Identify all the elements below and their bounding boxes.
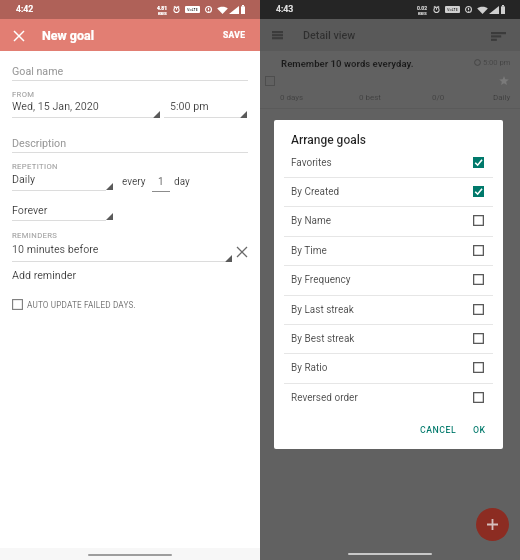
staticText: Add reminder [12, 269, 77, 282]
button[interactable]: Reversed order [274, 383, 503, 412]
staticText: Reversed order [291, 392, 358, 404]
button[interactable]: By Time [274, 236, 503, 265]
staticText: Favorites [291, 157, 332, 169]
button[interactable]: Sort [487, 25, 509, 47]
staticText: FROM [12, 90, 35, 99]
staticText: 0.02 [417, 5, 428, 11]
staticText: 10 minutes before [12, 243, 99, 256]
staticText: 1 [158, 176, 164, 188]
staticText: KB/S [158, 11, 167, 15]
button[interactable]: By Created [274, 177, 503, 206]
staticText: REPETITION [12, 162, 58, 171]
staticText: 4.81 [157, 5, 168, 11]
button[interactable]: By Last streak [274, 295, 503, 324]
staticText: CANCEL [420, 425, 457, 435]
staticText: Daily [493, 93, 511, 102]
staticText: By Frequency [291, 274, 351, 286]
button[interactable]: By Name [274, 206, 503, 235]
button[interactable]: By Frequency [274, 265, 503, 294]
staticText: By Ratio [291, 362, 328, 374]
staticText: 5:00 pm [483, 58, 511, 67]
staticText: By Name [291, 215, 332, 227]
staticText: Arrange goals [291, 133, 366, 147]
staticText: 0/0 [432, 93, 445, 102]
staticText: By Time [291, 245, 327, 257]
staticText: Goal name [12, 65, 64, 78]
button[interactable]: Remove reminder [232, 242, 252, 262]
button[interactable]: By Ratio [274, 353, 503, 382]
button[interactable]: CANCEL [415, 420, 462, 440]
button[interactable]: Favorites [274, 148, 503, 177]
button[interactable]: OK [468, 420, 491, 440]
staticText: New goal [42, 28, 95, 43]
staticText: every [122, 176, 146, 188]
staticText: Description [12, 137, 67, 150]
button[interactable]: SAVE [209, 22, 260, 48]
staticText: Wed, 15 Jan, 2020 [12, 100, 99, 113]
staticText: 0 days [280, 93, 304, 102]
staticText: day [174, 176, 190, 188]
staticText: KB/S [418, 11, 427, 15]
button[interactable]: AUTO UPDATE FAILED DAYS. [12, 299, 136, 310]
staticText: 5:00 pm [170, 100, 209, 113]
staticText: 4:42 [16, 4, 34, 14]
staticText: Remember 10 words everyday. [281, 58, 414, 69]
staticText: REMINDERS [12, 231, 58, 240]
staticText: Detail view [303, 29, 356, 42]
staticText: Forever [12, 204, 48, 217]
button[interactable]: Menu [267, 25, 287, 45]
button[interactable]: Close [8, 25, 29, 46]
staticText: AUTO UPDATE FAILED DAYS. [27, 300, 136, 310]
staticText: Daily [12, 173, 36, 186]
button[interactable]: By Best streak [274, 324, 503, 353]
staticText: VoLTE [187, 7, 198, 12]
staticText: 0 best [359, 93, 381, 102]
staticText: SAVE [223, 30, 246, 40]
staticText: By Created [291, 186, 340, 198]
button[interactable]: Add reminder [12, 269, 77, 282]
button[interactable]: Add goal [476, 508, 509, 541]
staticText: OK [473, 425, 486, 435]
staticText: 4:43 [276, 4, 294, 14]
staticText: By Best streak [291, 333, 355, 345]
staticText: By Last streak [291, 304, 354, 316]
staticText: VoLTE [447, 7, 458, 12]
